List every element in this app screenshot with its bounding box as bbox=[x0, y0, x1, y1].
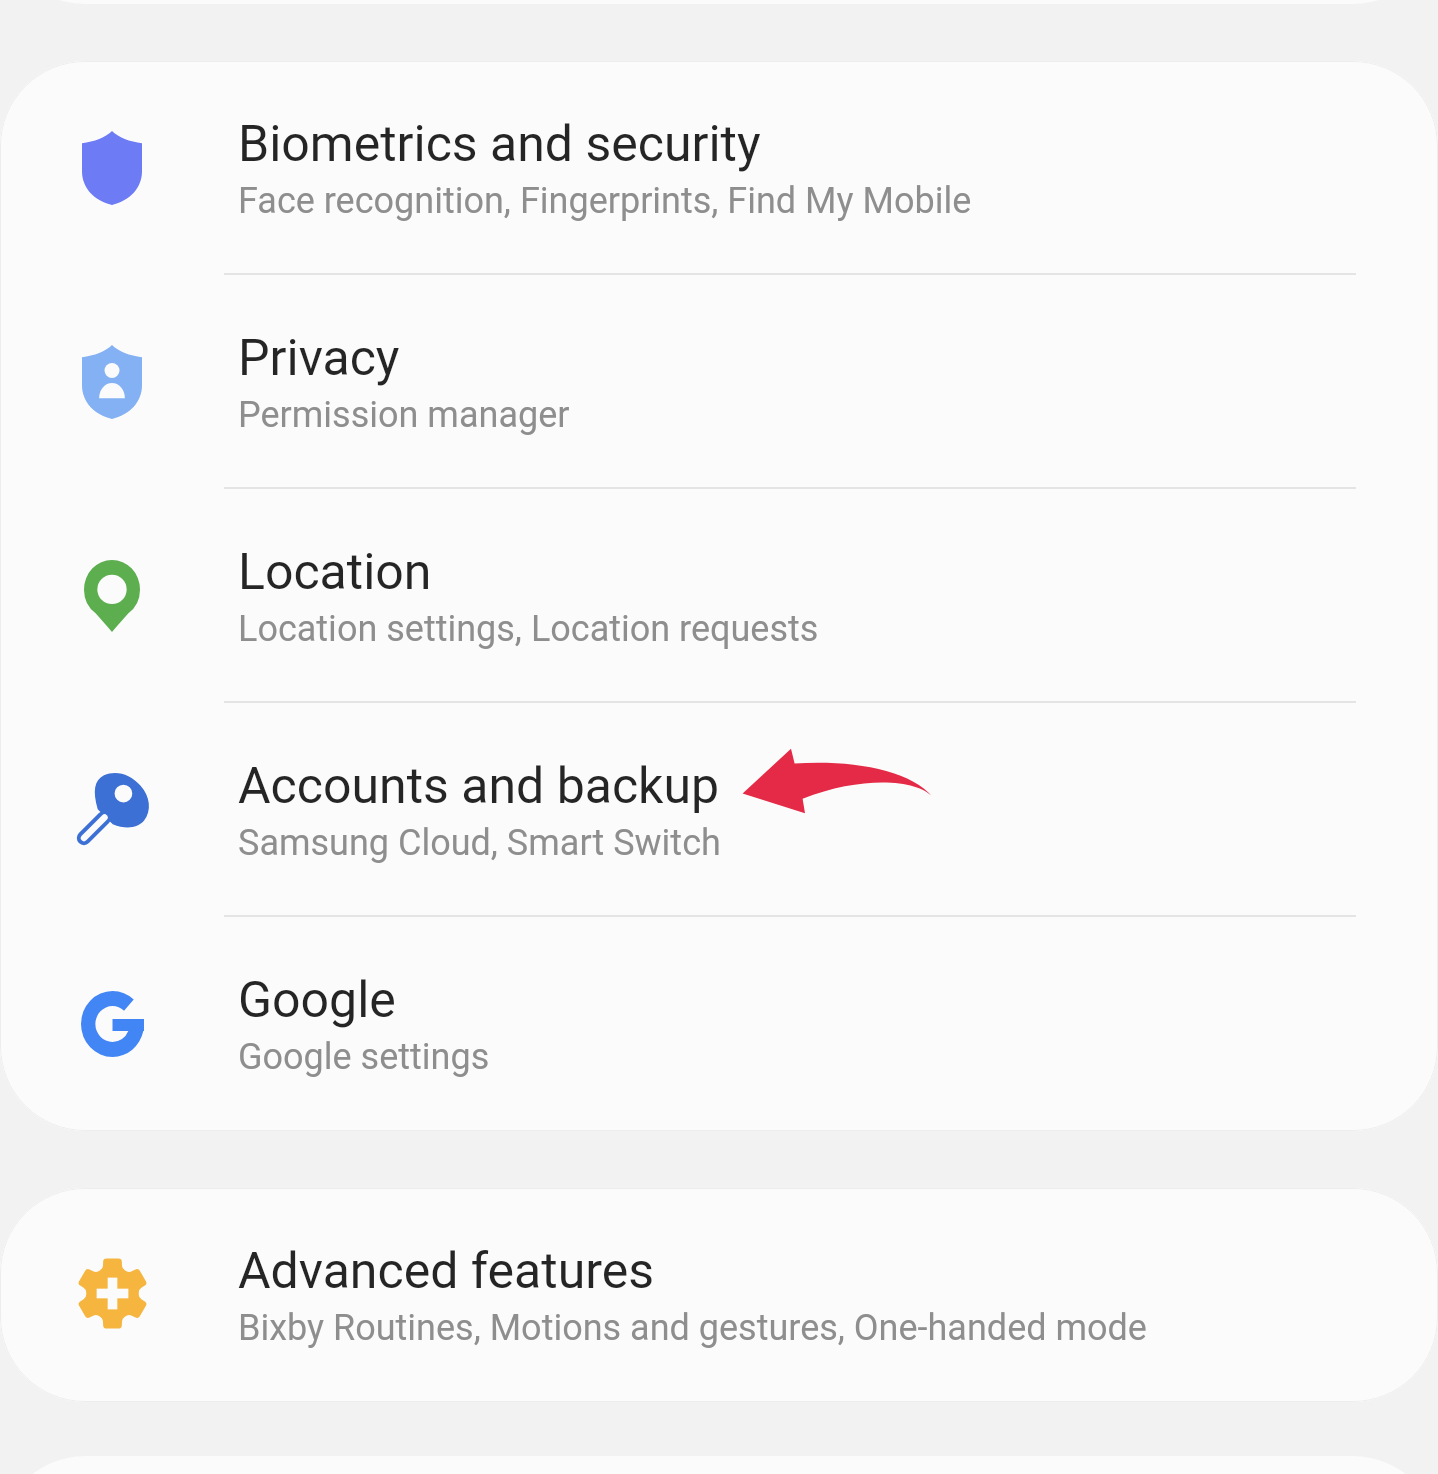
staticText: Advanced features bbox=[238, 1242, 654, 1301]
staticText: Face recognition, Fingerprints, Find My … bbox=[238, 180, 972, 222]
staticText: Biometrics and security bbox=[238, 115, 761, 174]
staticText: Bixby Routines, Motions and gestures, On… bbox=[238, 1307, 1147, 1349]
button[interactable]: Location bbox=[0, 489, 1438, 703]
button[interactable]: Google bbox=[0, 917, 1438, 1131]
staticText: Accounts and backup bbox=[238, 757, 720, 816]
staticText: Google bbox=[238, 971, 396, 1030]
staticText: Samsung Cloud, Smart Switch bbox=[238, 822, 721, 864]
staticText: Location settings, Location requests bbox=[238, 608, 819, 650]
button[interactable]: Biometrics and security bbox=[0, 61, 1438, 275]
staticText: Permission manager bbox=[238, 394, 570, 436]
staticText: Location bbox=[238, 543, 432, 602]
button[interactable]: Accounts and backup bbox=[0, 703, 1438, 917]
other: Accounts and backup highlight bbox=[742, 748, 934, 816]
staticText: Google settings bbox=[238, 1036, 490, 1078]
button[interactable]: Advanced features bbox=[0, 1188, 1438, 1402]
staticText: Privacy bbox=[238, 329, 400, 388]
button[interactable]: Privacy bbox=[0, 275, 1438, 489]
